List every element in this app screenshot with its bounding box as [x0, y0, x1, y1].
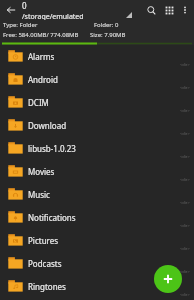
staticText: Download: [28, 120, 67, 131]
staticText: Ringtones: [28, 281, 66, 292]
staticText: <dir>: [180, 108, 190, 113]
staticText: <dir>: [180, 131, 190, 136]
staticText: <dir>: [180, 246, 190, 251]
button[interactable]: Search: [142, 1, 160, 19]
button[interactable]: More options: [178, 3, 192, 17]
staticText: <dir>: [180, 177, 190, 182]
staticText: Alarms: [28, 51, 55, 62]
staticText: /storage/emulated: [22, 12, 84, 20]
staticText: <dir>: [180, 62, 190, 67]
button[interactable]: Pictures: [0, 229, 194, 252]
staticText: Pictures: [28, 235, 59, 246]
button[interactable]: Back: [3, 2, 19, 18]
button[interactable]: Music: [0, 183, 194, 206]
staticText: <dir>: [180, 223, 190, 228]
button[interactable]: libusb-1.0.23: [0, 137, 194, 160]
staticText: DCIM: [28, 97, 49, 108]
staticText: Type: Folder: [3, 21, 38, 29]
button[interactable]: Add: [154, 265, 182, 293]
button[interactable]: Notifications: [0, 206, 194, 229]
staticText: Music: [28, 189, 50, 200]
staticText: <dir>: [180, 154, 190, 159]
staticText: <dir>: [180, 85, 190, 90]
button[interactable]: DCIM: [0, 91, 194, 114]
staticText: <dir>: [180, 292, 190, 297]
staticText: Android: [28, 74, 58, 85]
button[interactable]: Download: [0, 114, 194, 137]
staticText: 0: [22, 0, 27, 11]
staticText: Free: 584.00MB/ 774.08MB: [3, 31, 79, 39]
button[interactable]: Grid view: [160, 1, 178, 19]
button[interactable]: Ringtones: [0, 275, 194, 298]
button[interactable]: Alarms: [0, 45, 194, 68]
button[interactable]: Movies: [0, 160, 194, 183]
staticText: libusb-1.0.23: [28, 143, 76, 154]
staticText: Movies: [28, 166, 55, 177]
staticText: <dir>: [180, 269, 190, 274]
staticText: Podcasts: [28, 258, 62, 269]
button[interactable]: Android: [0, 68, 194, 91]
button[interactable]: Podcasts: [0, 252, 194, 275]
staticText: Size: 7.90MB: [90, 31, 126, 39]
staticText: <dir>: [180, 200, 190, 205]
staticText: Notifications: [28, 212, 76, 223]
staticText: Folder: 0: [94, 21, 119, 29]
